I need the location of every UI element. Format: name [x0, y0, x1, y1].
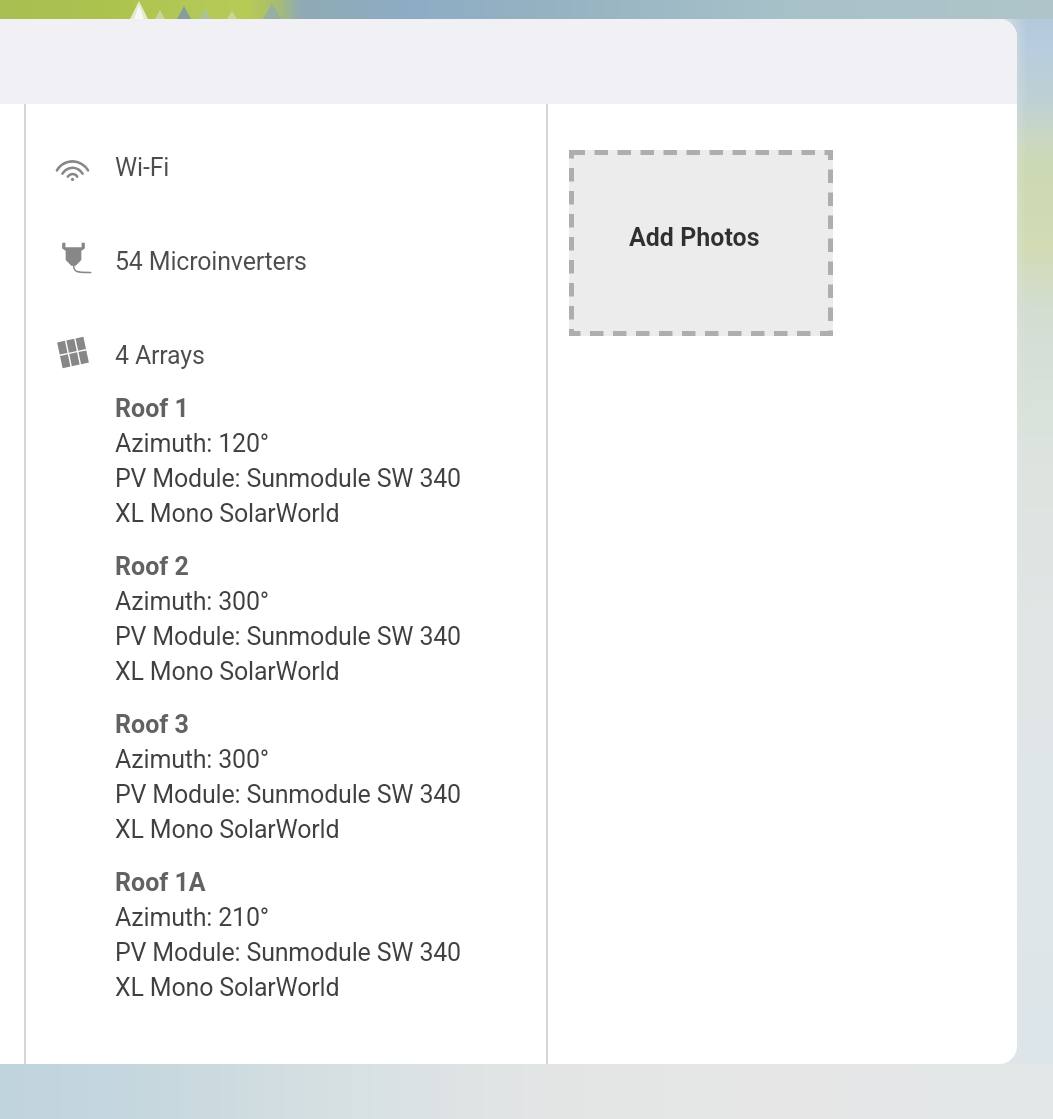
- staticText: Roof 2: [115, 547, 189, 582]
- button[interactable]: Add Photos: [569, 150, 833, 336]
- staticText: XL Mono SolarWorld: [115, 968, 340, 1003]
- staticText: Add Photos: [629, 223, 760, 252]
- staticText: Azimuth: 300°: [115, 582, 269, 617]
- staticText: 4 Arrays: [115, 341, 205, 370]
- staticText: PV Module: Sunmodule SW 340: [115, 933, 461, 968]
- staticText: XL Mono SolarWorld: [115, 652, 340, 687]
- staticText: Roof 3: [115, 705, 189, 740]
- staticText: PV Module: Sunmodule SW 340: [115, 459, 461, 494]
- staticText: Roof 1: [115, 389, 189, 424]
- staticText: Wi-Fi: [115, 153, 170, 182]
- staticText: Azimuth: 210°: [115, 898, 269, 933]
- staticText: Azimuth: 300°: [115, 740, 269, 775]
- staticText: Azimuth: 120°: [115, 424, 269, 459]
- staticText: XL Mono SolarWorld: [115, 810, 340, 845]
- button[interactable]: 4 Arrays: [44, 326, 524, 386]
- staticText: PV Module: Sunmodule SW 340: [115, 775, 461, 810]
- staticText: Roof 1A: [115, 863, 206, 898]
- staticText: XL Mono SolarWorld: [115, 494, 340, 529]
- button[interactable]: 54 Microinverters: [44, 232, 524, 292]
- staticText: 54 Microinverters: [115, 247, 307, 276]
- staticText: PV Module: Sunmodule SW 340: [115, 617, 461, 652]
- button[interactable]: Wi-Fi: [44, 138, 524, 198]
